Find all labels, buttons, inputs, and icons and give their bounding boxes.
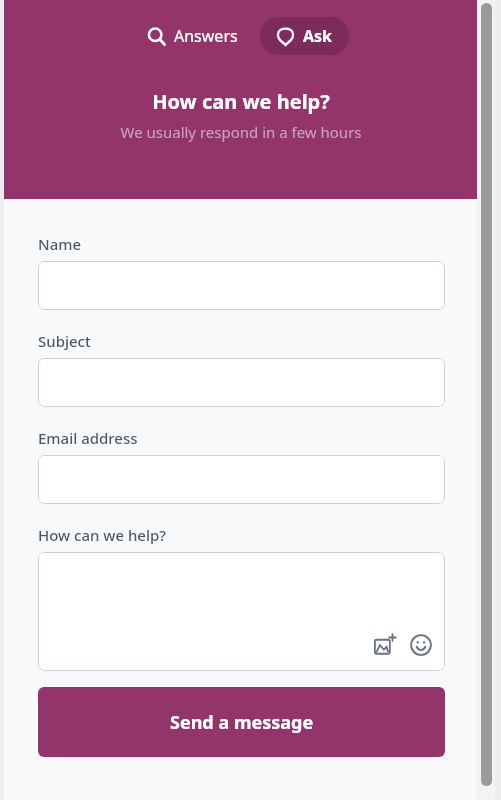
staticText: Ask: [303, 25, 333, 47]
staticText: How can we help?: [152, 88, 330, 115]
button[interactable]: Attach image: [38, 552, 445, 671]
button[interactable]: Answers: [133, 17, 252, 55]
button[interactable]: [38, 455, 445, 504]
button[interactable]: Ask: [260, 17, 349, 55]
staticText: Email address: [38, 428, 138, 448]
button[interactable]: [38, 261, 445, 310]
staticText: Subject: [38, 331, 91, 351]
staticText: We usually respond in a few hours: [120, 122, 362, 142]
button[interactable]: Send a message: [38, 687, 445, 757]
button[interactable]: [38, 358, 445, 407]
staticText: Name: [38, 234, 82, 254]
staticText: How can we help?: [38, 525, 167, 545]
button[interactable]: Insert emoji: [407, 631, 435, 659]
staticText: Answers: [174, 25, 238, 47]
staticText: Send a message: [170, 710, 314, 735]
button[interactable]: Attach image: [371, 631, 399, 659]
